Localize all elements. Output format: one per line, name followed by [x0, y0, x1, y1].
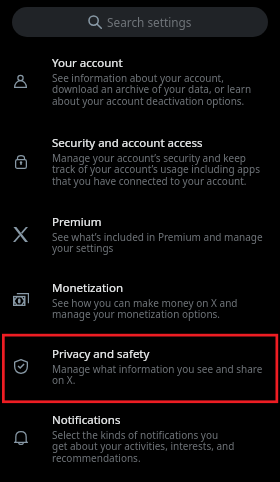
button[interactable]: Security and account access — [0, 123, 280, 202]
other: Premium — [13, 227, 28, 242]
button[interactable]: Notifications — [0, 400, 280, 470]
staticText: Manage what information you see and shar… — [52, 362, 263, 387]
staticText: Search settings — [107, 14, 192, 30]
staticText: Security and account access — [52, 135, 203, 151]
button[interactable]: Premium — [0, 202, 280, 268]
staticText: Monetization — [52, 280, 124, 296]
button[interactable]: Search settings — [12, 7, 268, 37]
button[interactable]: Monetization — [0, 268, 280, 334]
other: Notifications — [14, 431, 28, 445]
staticText: Your account — [52, 55, 123, 71]
staticText: Select the kinds of notifications you ge… — [52, 428, 235, 465]
staticText: Premium — [52, 214, 102, 230]
button[interactable]: Privacy and safety — [0, 334, 280, 400]
other: Your account — [14, 74, 27, 88]
button[interactable]: Your account — [0, 43, 280, 123]
staticText: See information about your account, down… — [52, 71, 252, 108]
other: Monetization — [13, 293, 29, 306]
other: Privacy and safety — [14, 359, 28, 374]
staticText: Notifications — [52, 412, 121, 428]
staticText: See what’s included in Premium and manag… — [52, 230, 263, 255]
staticText: See how you can make money on X and mana… — [52, 296, 238, 321]
other: Security and account access — [15, 155, 27, 169]
staticText: Manage your account’s security and keep … — [52, 151, 260, 188]
staticText: Privacy and safety — [52, 346, 150, 362]
